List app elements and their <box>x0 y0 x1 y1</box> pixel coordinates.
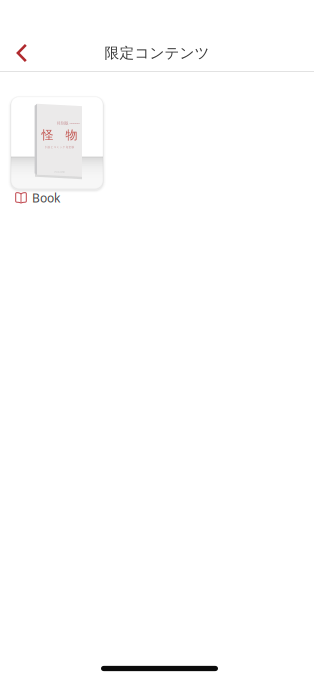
staticText: Book <box>32 190 60 206</box>
staticText: 怪 物 <box>42 128 78 142</box>
staticText: 特別版 ───── <box>57 121 80 126</box>
button[interactable]: Back <box>0 31 44 75</box>
staticText: 小説とコミック完全版 <box>45 145 75 149</box>
staticText: 限定コンテンツ <box>104 44 209 62</box>
button[interactable]: 特別版 ───── <box>11 97 103 206</box>
